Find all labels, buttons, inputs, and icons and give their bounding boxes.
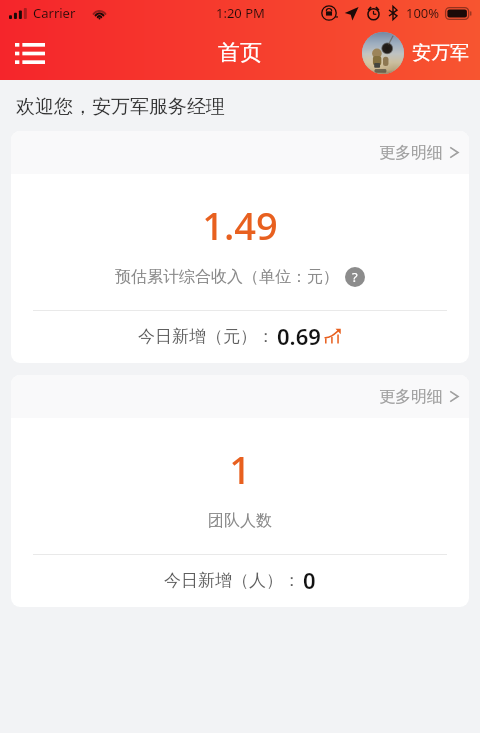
staticText: 更多明细: [379, 143, 443, 163]
button[interactable]: 更多明细: [11, 131, 469, 363]
staticText: 预估累计综合收入（单位：元）: [115, 267, 339, 287]
staticText: 团队人数: [208, 511, 272, 531]
button[interactable]: Help: [345, 267, 365, 287]
staticText: 1: [11, 443, 469, 495]
staticText: 安万军: [412, 41, 469, 65]
staticText: 欢迎您，安万军服务经理: [16, 95, 225, 119]
staticText: 更多明细: [379, 387, 443, 407]
button[interactable]: 安万军: [362, 32, 469, 74]
button[interactable]: 更多明细: [363, 375, 469, 418]
staticText: 1.49: [11, 199, 469, 251]
staticText: 1:20 PM: [216, 4, 265, 22]
staticText: 100%: [406, 4, 440, 22]
staticText: Carrier: [33, 4, 76, 22]
staticText: 0: [303, 565, 316, 595]
staticText: 首页: [218, 39, 262, 67]
button[interactable]: 更多明细: [363, 131, 469, 174]
staticText: 今日新增（元）：: [138, 326, 274, 347]
staticText: 0.69: [277, 321, 321, 351]
button[interactable]: Menu: [6, 29, 54, 77]
staticText: ?: [352, 268, 358, 286]
staticText: 今日新增（人）：: [164, 570, 300, 591]
button[interactable]: 更多明细: [11, 375, 469, 607]
